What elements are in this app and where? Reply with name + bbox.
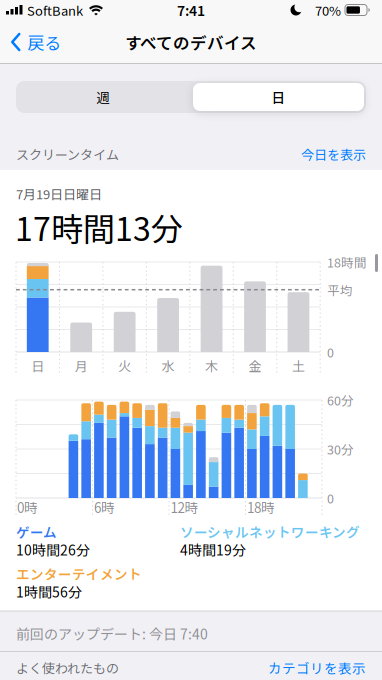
staticText: 水 <box>162 356 175 375</box>
staticText: すべてのデバイス <box>125 30 257 54</box>
staticText: 土 <box>292 356 305 375</box>
staticText: 30分 <box>327 440 354 458</box>
staticText: 18時間 <box>327 253 367 271</box>
staticText: 7:41 <box>177 0 205 20</box>
staticText: ソーシャルネットワーキング <box>180 522 360 541</box>
staticText: 7月19日日曜日 <box>16 184 102 203</box>
staticText: 1時間56分 <box>16 581 82 602</box>
staticText: よく使われたもの <box>16 658 119 677</box>
staticText: 火 <box>118 356 131 375</box>
staticText: SoftBank <box>27 1 83 19</box>
staticText: 18時 <box>247 497 275 517</box>
staticText: 0 <box>327 489 334 507</box>
staticText: 17時間13分 <box>15 204 183 250</box>
staticText: 前回のアップデート: 今日 7:40 <box>16 623 208 644</box>
staticText: スクリーンタイム <box>16 145 119 163</box>
staticText: 金 <box>248 356 261 375</box>
staticText: エンターテイメント <box>16 564 142 583</box>
button[interactable]: 週 <box>18 81 188 113</box>
staticText: 4時間19分 <box>180 539 246 560</box>
staticText: 60分 <box>327 391 354 409</box>
staticText: 70% <box>315 1 341 19</box>
staticText: 月 <box>75 356 88 375</box>
button[interactable]: 今日を表示 <box>301 145 366 163</box>
staticText: カテゴリを表示 <box>268 658 366 677</box>
staticText: 10時間26分 <box>16 539 90 560</box>
button[interactable]: 戻る <box>11 30 61 54</box>
button[interactable]: 日 <box>193 83 364 111</box>
staticText: 0時 <box>17 497 38 517</box>
staticText: 12時 <box>170 497 198 517</box>
staticText: 戻る <box>27 30 61 54</box>
staticText: 0 <box>327 343 334 361</box>
button[interactable]: カテゴリを表示 <box>268 658 366 677</box>
staticText: 平均 <box>327 281 353 299</box>
staticText: 今日を表示 <box>301 145 366 163</box>
staticText: 日 <box>271 87 285 107</box>
staticText: ゲーム <box>16 522 57 541</box>
staticText: 日 <box>31 356 44 375</box>
staticText: 週 <box>96 87 110 107</box>
staticText: 6時 <box>94 497 115 517</box>
staticText: 木 <box>205 356 218 375</box>
